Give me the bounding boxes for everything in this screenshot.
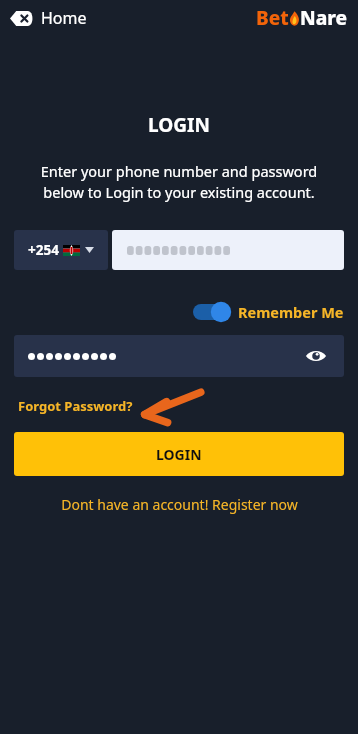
staticText: Enter your phone number and password bel… [16,161,342,203]
staticText: Bet [256,5,289,31]
button[interactable]: Home [8,3,89,33]
button[interactable]: Select country code [14,230,108,270]
button[interactable]: Show password [14,335,344,377]
staticText: Remember Me [238,302,344,322]
button[interactable] [112,230,344,270]
button[interactable]: Dont have an account! Register now [53,492,306,517]
staticText: Home [41,7,87,29]
staticText: Nare [300,5,348,31]
button[interactable]: Show password [302,342,330,370]
staticText: LOGIN [0,112,358,138]
button[interactable]: Bet [256,5,348,31]
staticText: +254 [28,241,59,259]
button[interactable]: Forgot Password? [18,397,133,415]
staticText: LOGIN [156,445,202,464]
button[interactable]: Remember Me [193,298,344,326]
button[interactable]: LOGIN [14,432,344,476]
